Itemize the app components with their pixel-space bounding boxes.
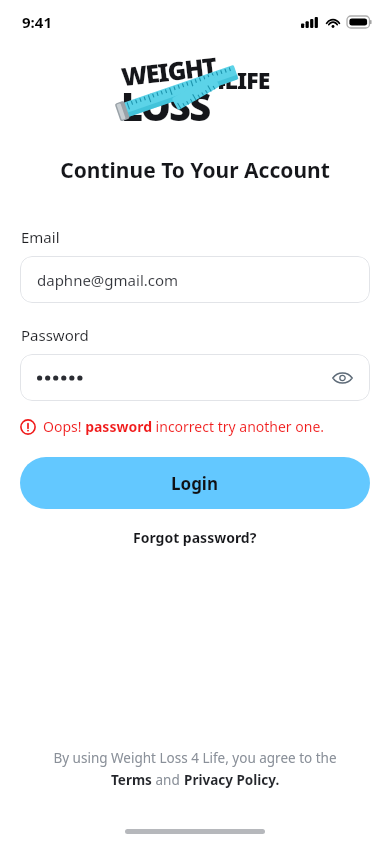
button[interactable]: Show password <box>324 360 360 396</box>
staticText: Oops! password incorrect try another one… <box>43 417 325 436</box>
staticText: Continue To Your Account <box>0 156 390 185</box>
staticText: WEIGHT <box>119 49 218 93</box>
staticText: By using Weight Loss 4 Life, you agree t… <box>53 749 337 767</box>
staticText: 4LIFE <box>212 64 270 95</box>
button[interactable]: Show password <box>20 354 370 401</box>
button[interactable]: Forgot password? <box>125 526 265 549</box>
staticText: Password <box>21 325 390 345</box>
button[interactable]: Login <box>20 457 370 509</box>
staticText: 9:41 <box>22 12 52 32</box>
staticText: Login <box>171 472 219 495</box>
button[interactable]: Terms <box>111 771 152 789</box>
staticText: LOSS <box>121 80 210 126</box>
staticText: daphne@gmail.com <box>37 270 179 290</box>
staticText: and <box>152 771 184 789</box>
button[interactable]: daphne@gmail.com <box>20 256 370 303</box>
staticText: Email <box>21 227 390 247</box>
button[interactable]: Privacy Policy. <box>184 771 280 789</box>
